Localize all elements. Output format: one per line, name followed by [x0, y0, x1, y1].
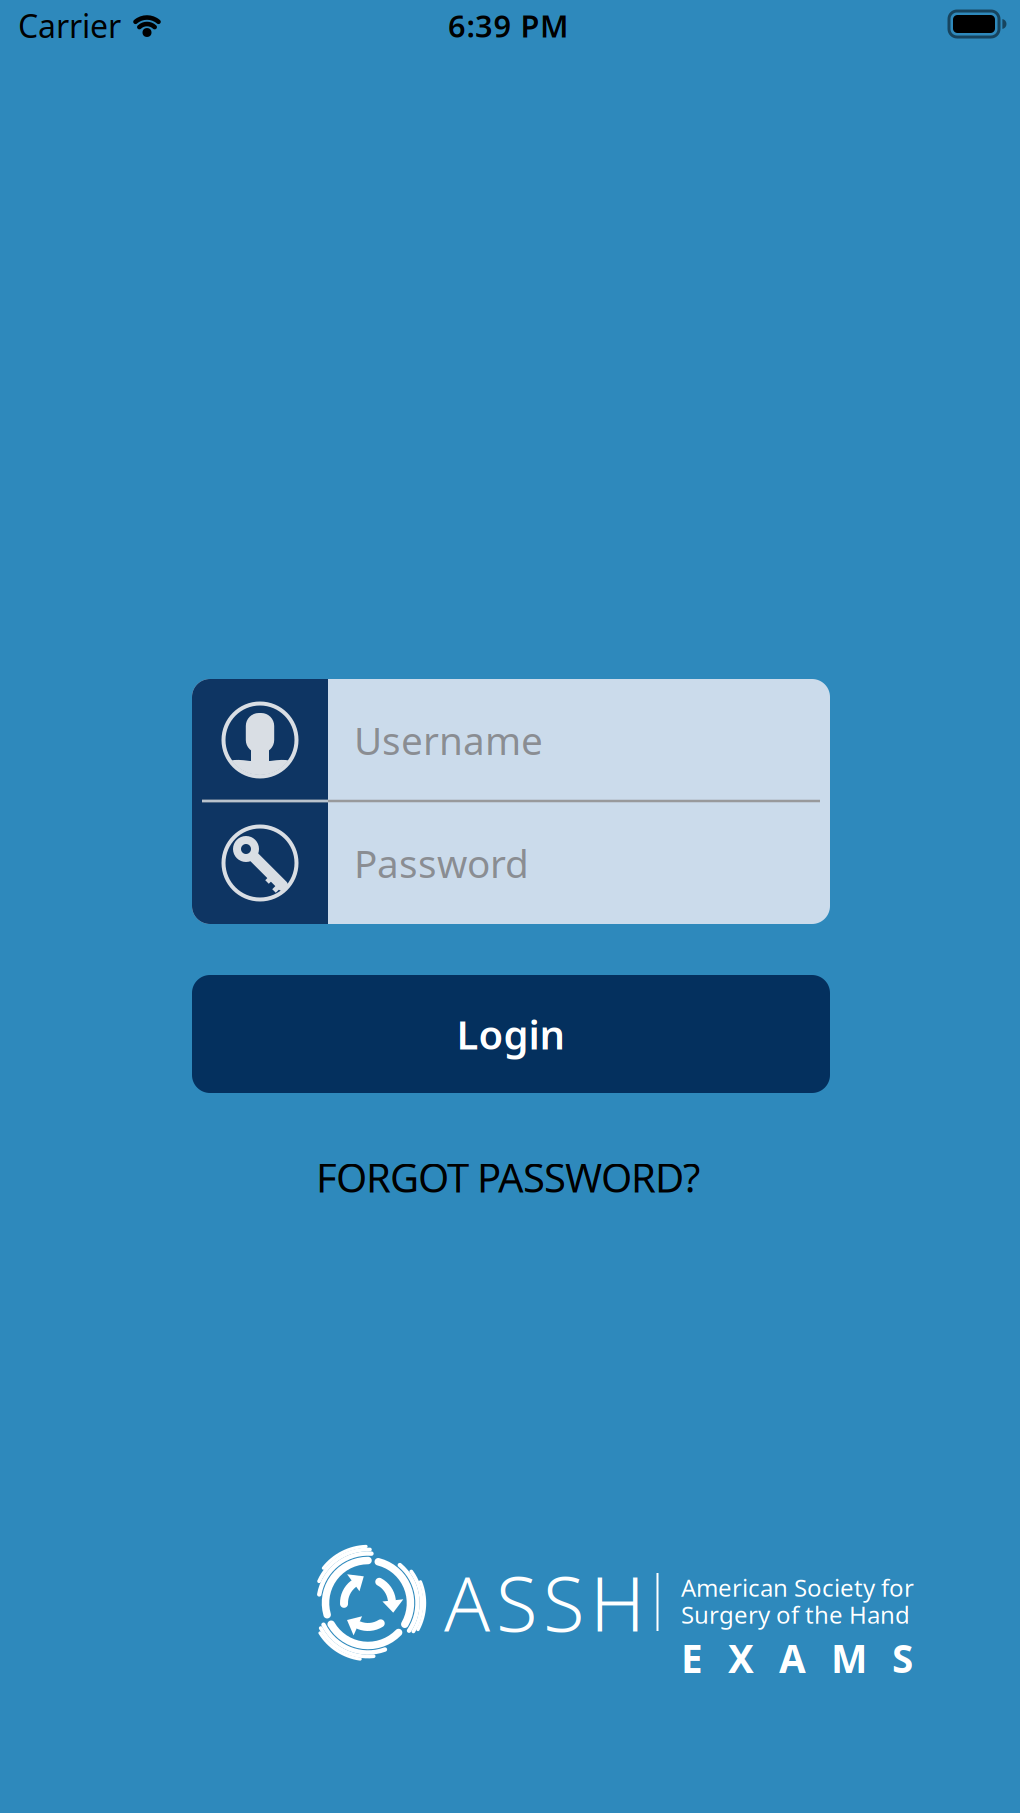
staticText: FORGOT PASSWORD? [316, 1150, 700, 1203]
button[interactable]: FORGOT PASSWORD? [316, 1150, 700, 1203]
button[interactable]: Username [192, 679, 830, 801]
staticText: Username [354, 714, 543, 766]
staticText: Carrier [18, 4, 121, 47]
button[interactable]: Login [192, 975, 830, 1093]
staticText: Login [456, 1007, 565, 1060]
staticText: American Society for [681, 1572, 914, 1603]
staticText: EXAMS [681, 1632, 913, 1684]
button[interactable]: Password [192, 802, 830, 924]
staticText: 6:39 PM [448, 5, 568, 46]
staticText: Password [354, 837, 529, 889]
staticText: ASSH [444, 1551, 645, 1652]
staticText: Surgery of the Hand [681, 1599, 910, 1630]
